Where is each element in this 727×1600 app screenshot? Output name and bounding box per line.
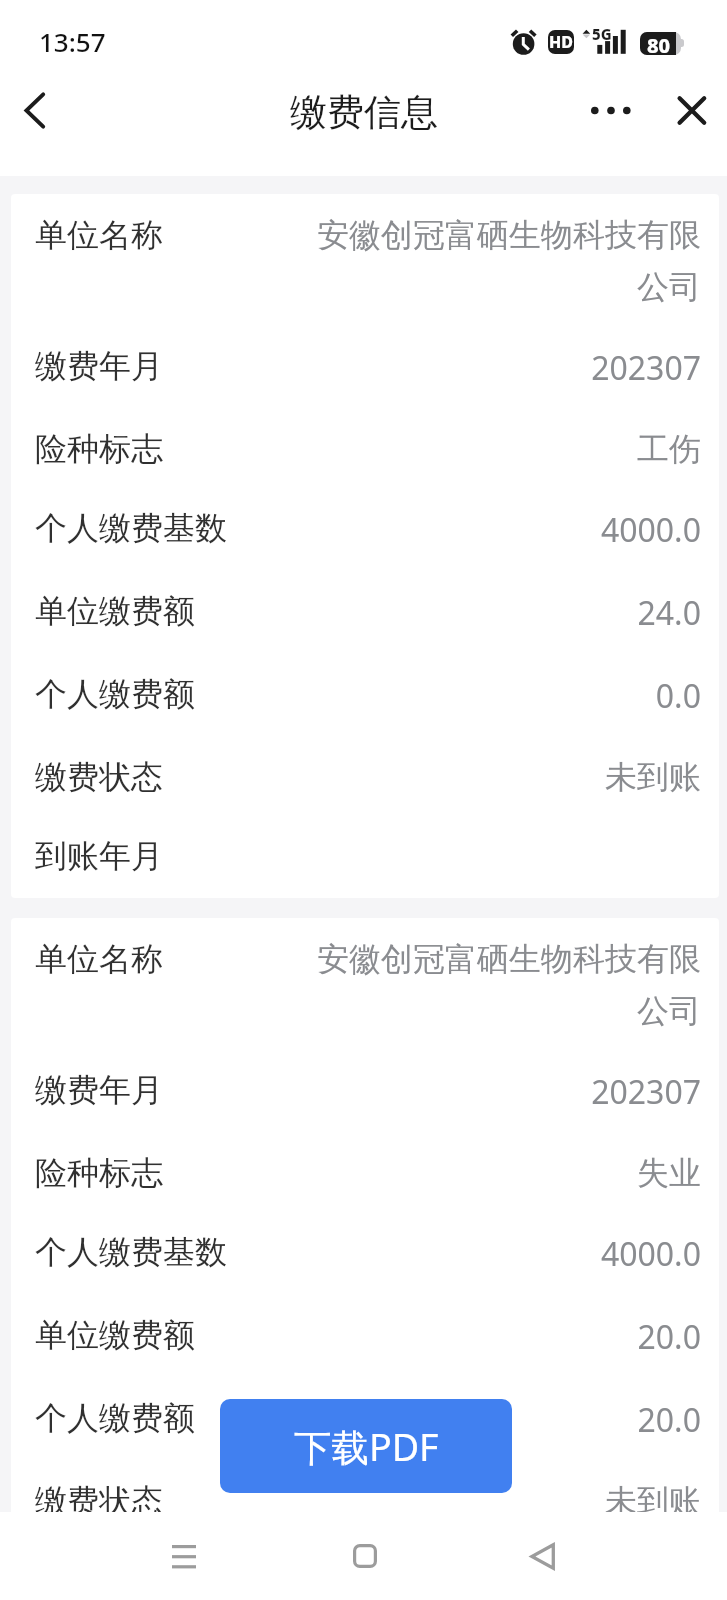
button[interactable]: 下载PDF xyxy=(220,1399,512,1493)
button[interactable]: 个人缴费基数 xyxy=(11,487,719,570)
staticText: 单位缴费额 xyxy=(35,1315,195,1355)
button[interactable]: 到账年月 xyxy=(11,815,719,898)
staticText: HD xyxy=(549,31,573,53)
staticText: 202307 xyxy=(293,346,701,390)
staticText: 险种标志 xyxy=(35,1153,163,1193)
button[interactable]: Back xyxy=(510,1524,574,1588)
staticText: 单位缴费额 xyxy=(35,591,195,631)
staticText: 缴费年月 xyxy=(35,1070,163,1110)
button[interactable]: 险种标志 xyxy=(11,408,719,487)
button[interactable]: Close xyxy=(660,72,724,152)
staticText: 工伤 xyxy=(293,429,701,469)
button[interactable]: More options xyxy=(570,72,654,152)
staticText: 13:57 xyxy=(39,24,106,59)
staticText: 单位名称 xyxy=(35,215,163,255)
button[interactable]: Home xyxy=(333,1524,397,1588)
button[interactable]: 缴费年月 xyxy=(11,1049,719,1132)
staticText: 缴费信息 xyxy=(290,89,438,136)
staticText: 险种标志 xyxy=(35,429,163,469)
button[interactable]: 缴费状态 xyxy=(11,736,719,815)
staticText: 个人缴费额 xyxy=(35,674,195,714)
staticText: 缴费状态 xyxy=(35,757,163,797)
button[interactable]: 个人缴费基数 xyxy=(11,1211,719,1294)
button[interactable]: 单位缴费额 xyxy=(11,570,719,653)
staticText: 24.0 xyxy=(293,591,701,635)
button[interactable]: Back xyxy=(0,72,80,152)
staticText: 到账年月 xyxy=(35,836,163,876)
staticText: 0.0 xyxy=(293,674,701,718)
button[interactable]: Recents xyxy=(152,1524,216,1588)
staticText: 80 xyxy=(647,32,671,55)
staticText: 202307 xyxy=(293,1070,701,1114)
staticText: 单位名称 xyxy=(35,939,163,979)
staticText: 个人缴费基数 xyxy=(35,508,227,548)
staticText: 4000.0 xyxy=(293,1232,701,1276)
staticText: 4000.0 xyxy=(293,508,701,552)
staticText: 失业 xyxy=(293,1153,701,1193)
button[interactable]: 个人缴费额 xyxy=(11,1377,719,1460)
staticText: 缴费年月 xyxy=(35,346,163,386)
button[interactable]: 单位缴费额 xyxy=(11,1294,719,1377)
button[interactable]: 险种标志 xyxy=(11,1132,719,1211)
staticText: 下载PDF xyxy=(294,1421,439,1472)
staticText: 20.0 xyxy=(293,1315,701,1359)
staticText: 缴费状态 xyxy=(35,1481,163,1512)
button[interactable]: 缴费状态 xyxy=(11,1460,719,1512)
button[interactable]: 缴费年月 xyxy=(11,325,719,408)
staticText: 5G xyxy=(592,24,612,44)
staticText: 个人缴费基数 xyxy=(35,1232,227,1272)
button[interactable]: 个人缴费额 xyxy=(11,653,719,736)
staticText: 未到账 xyxy=(293,757,701,797)
staticText: 20.0 xyxy=(293,1398,701,1442)
staticText: 安徽创冠富硒生物科技有限公司 xyxy=(293,939,701,1031)
staticText: 个人缴费额 xyxy=(35,1398,195,1438)
button[interactable]: 单位名称 xyxy=(11,918,719,1049)
staticText: 安徽创冠富硒生物科技有限公司 xyxy=(293,215,701,307)
button[interactable]: 单位名称 xyxy=(11,194,719,325)
staticText: 未到账 xyxy=(293,1481,701,1512)
